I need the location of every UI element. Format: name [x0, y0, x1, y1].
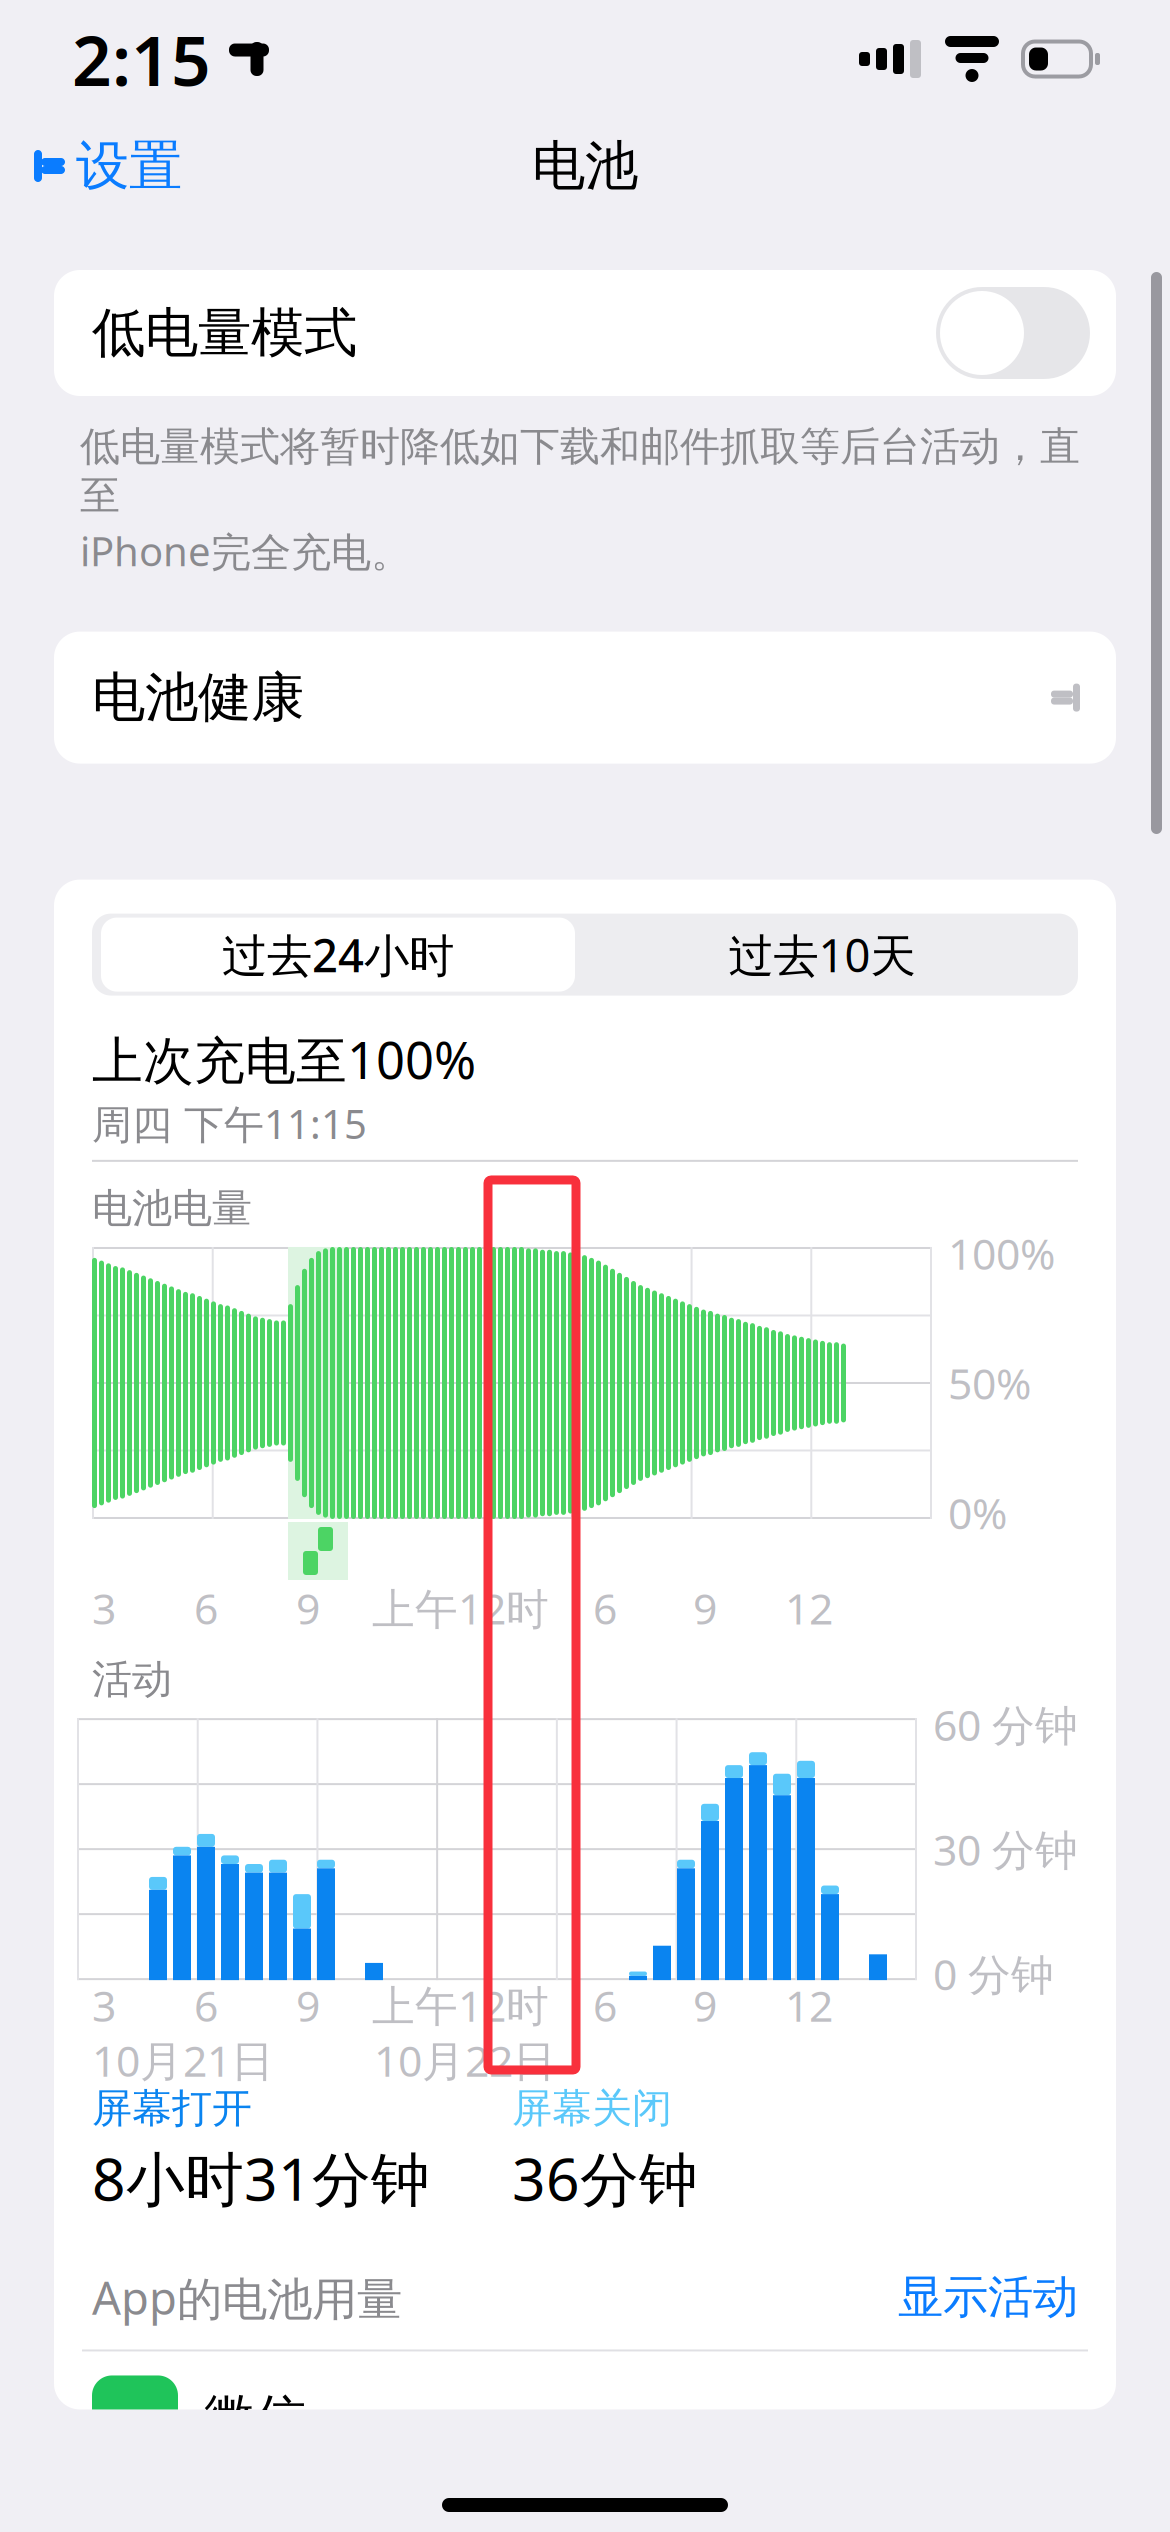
- staticText: 10月22日: [374, 2032, 556, 2088]
- staticText: 9: [693, 1977, 717, 2033]
- staticText: 9: [693, 1580, 717, 1636]
- staticText: 显示活动: [898, 2269, 1078, 2325]
- button[interactable]: 电池健康: [54, 632, 1116, 764]
- staticText: App的电池用量: [92, 2267, 402, 2327]
- staticText: 上午12时: [372, 1580, 549, 1636]
- staticText: 100%: [948, 1225, 1055, 1282]
- staticText: 6: [593, 1580, 617, 1636]
- staticText: 屏幕关闭: [512, 2084, 672, 2133]
- staticText: 周四 下午11:15: [92, 1097, 367, 1150]
- staticText: 8小时31分钟: [92, 2139, 430, 2217]
- staticText: iPhone完全充电。: [80, 524, 411, 578]
- staticText: 上午12时: [372, 1977, 549, 2033]
- staticText: 12: [785, 1977, 833, 2033]
- staticText: 过去10天: [728, 924, 915, 985]
- staticText: 3: [92, 1580, 116, 1636]
- staticText: 36分钟: [512, 2139, 698, 2217]
- staticText: 0%: [948, 1484, 1007, 1541]
- staticText: 电池健康: [92, 665, 304, 730]
- staticText: 0 分钟: [933, 1945, 1054, 2002]
- staticText: 50%: [948, 1355, 1031, 1411]
- staticText: 6: [593, 1977, 617, 2033]
- staticText: 低电量模式: [92, 300, 357, 366]
- staticText: 低电量模式将暂时降低如下载和邮件抓取等后台活动，直至: [80, 422, 1080, 520]
- staticText: 3: [92, 1977, 116, 2033]
- button[interactable]: 过去10天: [575, 918, 1069, 992]
- staticText: 上次充电至100%: [92, 1026, 476, 1093]
- staticText: 屏幕打开: [92, 2084, 252, 2133]
- staticText: 设置: [76, 133, 182, 199]
- staticText: 电池: [532, 133, 638, 199]
- staticText: 2:15: [72, 13, 211, 105]
- button[interactable]: 设置: [0, 119, 204, 213]
- staticText: 60 分钟: [933, 1696, 1078, 1753]
- staticText: 10月21日: [92, 2032, 274, 2088]
- staticText: 9: [296, 1977, 320, 2033]
- staticText: 6: [194, 1580, 218, 1636]
- staticText: 9: [296, 1580, 320, 1636]
- button[interactable]: 显示活动: [898, 2269, 1078, 2325]
- staticText: 12: [785, 1580, 833, 1636]
- staticText: 活动: [92, 1655, 172, 1704]
- button[interactable]: 过去24小时: [101, 918, 575, 992]
- staticText: 过去24小时: [222, 924, 454, 985]
- staticText: 电池电量: [92, 1184, 252, 1233]
- button[interactable]: 低电量模式: [936, 287, 1090, 379]
- staticText: 微信: [204, 2387, 306, 2449]
- staticText: 6: [194, 1977, 218, 2033]
- staticText: 30 分钟: [933, 1821, 1078, 1877]
